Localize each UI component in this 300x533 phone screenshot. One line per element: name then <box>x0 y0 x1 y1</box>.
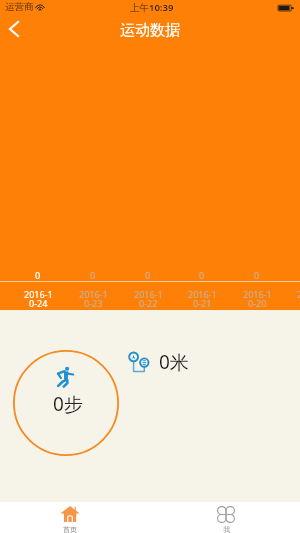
staticText: 0-20 <box>248 297 267 309</box>
staticText: 2016-1 <box>24 288 53 300</box>
staticText: 0-23 <box>84 297 103 309</box>
staticText: 0米 <box>159 349 189 375</box>
button[interactable]: Back <box>0 15 28 43</box>
staticText: 我 <box>223 525 230 533</box>
staticText: 0 <box>90 269 96 281</box>
staticText: 2016-1 <box>134 288 163 300</box>
button[interactable]: 我 <box>176 502 276 533</box>
staticText: 0 <box>145 269 151 281</box>
staticText: 0-24 <box>29 297 48 309</box>
staticText: 2016-1 <box>79 288 108 300</box>
staticText: 运营商 <box>5 1 34 13</box>
staticText: 运动数据 <box>120 21 180 40</box>
staticText: 0 <box>254 269 260 281</box>
staticText: 上午10:39 <box>130 1 174 14</box>
staticText: 2016-1 <box>297 288 300 300</box>
staticText: 0 <box>199 269 205 281</box>
staticText: 0 <box>35 269 41 281</box>
staticText: 2016-1 <box>243 288 272 300</box>
staticText: 首页 <box>63 525 77 533</box>
staticText: 0步 <box>53 391 83 417</box>
staticText: 0-21 <box>193 297 212 309</box>
staticText: 2016-1 <box>188 288 217 300</box>
staticText: 0-22 <box>139 297 158 309</box>
button[interactable]: 首页 <box>20 502 120 533</box>
